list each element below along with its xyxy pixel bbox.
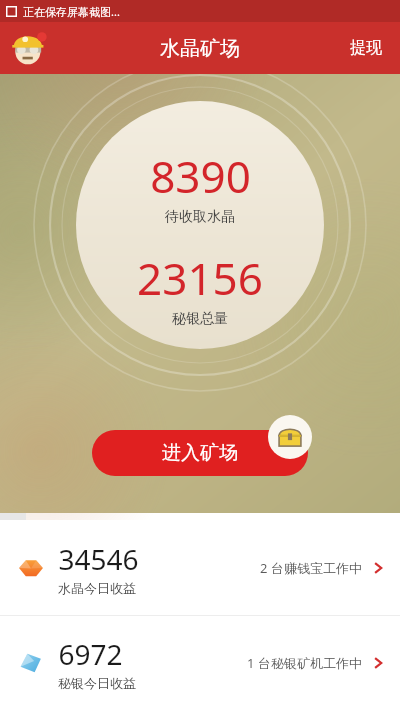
- button[interactable]: 6972: [0, 632, 400, 694]
- staticText: 2 台赚钱宝工作中: [260, 559, 362, 577]
- button[interactable]: 宝箱: [268, 415, 312, 459]
- staticText: 23156: [137, 248, 263, 308]
- button[interactable]: 34546: [0, 537, 400, 599]
- staticText: 水晶今日收益: [58, 580, 136, 596]
- staticText: 8390: [150, 146, 251, 206]
- staticText: 1 台秘银矿机工作中: [247, 654, 362, 672]
- staticText: i: [12, 518, 15, 533]
- staticText: 提现: [350, 38, 382, 58]
- button[interactable]: 进入矿场: [92, 430, 308, 476]
- button[interactable]: 个人中心: [10, 29, 48, 67]
- staticText: 秘银总量: [172, 310, 228, 328]
- staticText: 34546: [58, 540, 139, 578]
- staticText: 待收取水晶: [165, 208, 235, 226]
- staticText: 秘银今日收益: [58, 675, 136, 691]
- staticText: 水晶矿场: [160, 36, 240, 61]
- staticText: 6972: [58, 635, 123, 673]
- staticText: 进入矿场: [162, 441, 238, 465]
- staticText: 正在保存屏幕截图...: [23, 4, 120, 19]
- button[interactable]: 提现: [346, 32, 386, 64]
